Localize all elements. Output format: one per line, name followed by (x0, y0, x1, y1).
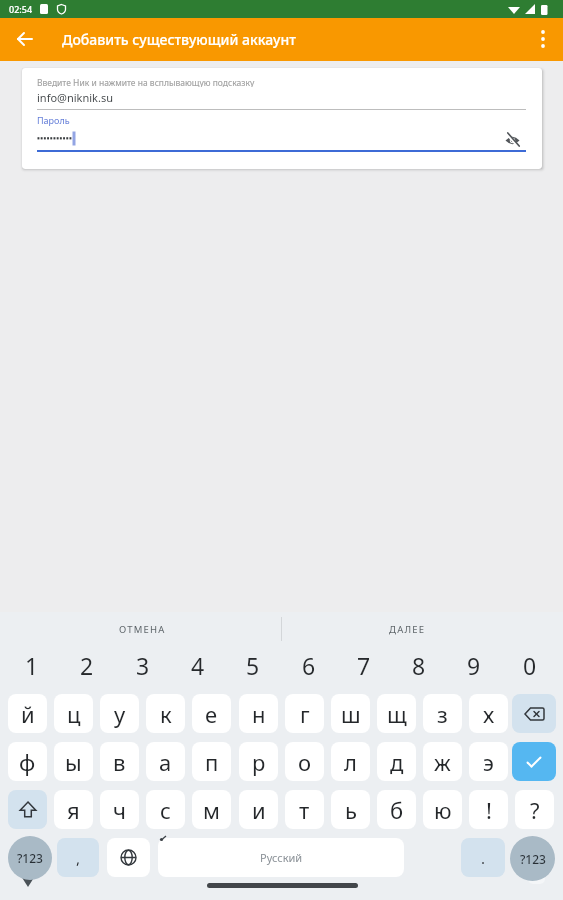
staticText: ы (65, 747, 82, 777)
staticText: з (437, 699, 448, 729)
staticText: Введите Ник и нажмите на всплывающую под… (37, 77, 255, 87)
staticText: ч (113, 795, 126, 825)
staticText: ! (486, 795, 492, 825)
staticText: ?123 (520, 851, 546, 867)
staticText: ь (345, 795, 357, 825)
staticText: к (160, 699, 172, 729)
button[interactable] (512, 742, 556, 781)
button[interactable]: т (285, 790, 324, 829)
staticText: г (300, 699, 310, 729)
button[interactable]: л (331, 742, 370, 781)
button[interactable]: ф (8, 742, 47, 781)
staticText: ц (67, 699, 81, 729)
button[interactable]: м (192, 790, 231, 829)
button[interactable]: , (57, 838, 99, 877)
button[interactable]: ц (54, 694, 93, 733)
staticText: х (483, 699, 495, 729)
staticText: п (205, 747, 219, 777)
staticText: ю (434, 795, 452, 825)
staticText: info@niknik.su (37, 90, 113, 105)
staticText: ? (530, 795, 540, 825)
button[interactable]: я (54, 790, 93, 829)
button[interactable]: д (377, 742, 416, 781)
staticText: ж (434, 747, 451, 777)
button[interactable]: р (239, 742, 278, 781)
staticText: Пароль (37, 114, 70, 126)
staticText: щ (387, 699, 407, 729)
staticText: т (299, 795, 310, 825)
button[interactable]: ? (515, 790, 554, 829)
button[interactable] (8, 790, 47, 829)
staticText: Русский (260, 850, 303, 865)
staticText: 8 (412, 650, 426, 680)
staticText: 9 (467, 650, 481, 680)
button[interactable]: Русский (158, 838, 404, 877)
staticText: о (298, 747, 312, 777)
button[interactable]: ы (54, 742, 93, 781)
button[interactable]: а (146, 742, 185, 781)
staticText: л (344, 747, 357, 777)
button[interactable]: х (469, 694, 508, 733)
staticText: э (483, 747, 494, 777)
button[interactable] (530, 26, 556, 52)
button[interactable]: г (285, 694, 324, 733)
button[interactable]: э (469, 742, 508, 781)
button[interactable]: ю (423, 790, 462, 829)
button[interactable]: . (461, 838, 505, 877)
button[interactable] (498, 126, 526, 154)
staticText: ш (341, 699, 361, 729)
button[interactable]: н (239, 694, 278, 733)
staticText: д (390, 747, 404, 777)
staticText: 5 (246, 650, 260, 680)
staticText: у (114, 699, 126, 729)
staticText: я (67, 795, 80, 825)
staticText: 2 (80, 650, 94, 680)
staticText: ДАЛЕЕ (389, 623, 426, 636)
button[interactable]: ч (100, 790, 139, 829)
staticText: 3 (136, 650, 150, 680)
button[interactable]: ш (331, 694, 370, 733)
button[interactable]: ОТМЕНА (90, 612, 195, 646)
staticText: с (160, 795, 171, 825)
button[interactable]: ь (331, 790, 370, 829)
button[interactable]: е (192, 694, 231, 733)
button[interactable]: и (239, 790, 278, 829)
staticText: . (481, 848, 486, 868)
staticText: ОТМЕНА (119, 623, 166, 636)
button[interactable] (512, 694, 556, 733)
staticText: е (205, 699, 218, 729)
button[interactable]: й (8, 694, 47, 733)
button[interactable]: п (192, 742, 231, 781)
staticText: ?123 (17, 850, 43, 866)
staticText: й (21, 699, 35, 729)
button[interactable] (10, 24, 40, 54)
staticText: м (203, 795, 220, 825)
staticText: 02:54 (9, 3, 33, 15)
staticText: в (113, 747, 126, 777)
staticText: Добавить существующий аккаунт (62, 30, 296, 49)
staticText: 4 (191, 650, 205, 680)
staticText: р (252, 747, 266, 777)
button[interactable]: о (285, 742, 324, 781)
button[interactable]: ДАЛЕЕ (355, 612, 460, 646)
button[interactable]: ! (469, 790, 508, 829)
staticText: н (252, 699, 266, 729)
staticText: 1 (25, 650, 39, 680)
button[interactable]: щ (377, 694, 416, 733)
button[interactable]: ?123 (510, 836, 555, 881)
button[interactable]: б (377, 790, 416, 829)
button[interactable]: ?123 (8, 836, 52, 880)
button[interactable]: з (423, 694, 462, 733)
staticText: , (76, 848, 81, 868)
staticText: и (252, 795, 266, 825)
button[interactable]: ж (423, 742, 462, 781)
button[interactable]: с (146, 790, 185, 829)
staticText: 7 (357, 650, 371, 680)
button[interactable]: к (146, 694, 185, 733)
staticText: 6 (302, 650, 316, 680)
button[interactable]: в (100, 742, 139, 781)
button[interactable]: у (100, 694, 139, 733)
staticText: ф (19, 747, 36, 777)
button[interactable] (107, 838, 150, 877)
staticText: 0 (523, 650, 537, 680)
